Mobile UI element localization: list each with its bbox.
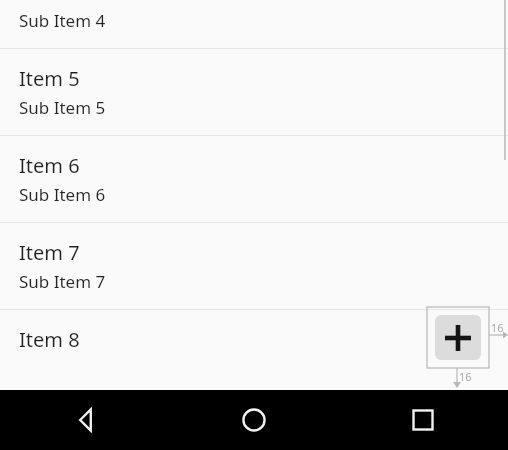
staticText: Item 5 xyxy=(19,65,80,92)
staticText: Item 6 xyxy=(19,152,80,179)
staticText: Item 7 xyxy=(19,239,80,266)
button[interactable]: Item 6 xyxy=(0,136,508,223)
button[interactable]: Back xyxy=(0,390,169,450)
button[interactable]: Item 4 xyxy=(0,0,508,49)
button[interactable]: Item 7 xyxy=(0,223,508,310)
staticText: 16 xyxy=(459,369,472,384)
staticText: Sub Item 7 xyxy=(19,270,106,293)
staticText: Sub Item 4 xyxy=(19,9,106,32)
button[interactable]: Item 8 xyxy=(0,310,508,352)
button[interactable]: Item 5 xyxy=(0,49,508,136)
button[interactable]: Recent apps xyxy=(338,390,508,450)
staticText: Sub Item 6 xyxy=(19,183,106,206)
staticText: Sub Item 5 xyxy=(19,96,106,119)
staticText: 16 xyxy=(491,320,504,335)
button[interactable]: Add xyxy=(435,315,481,360)
staticText: Item 8 xyxy=(19,326,80,352)
button[interactable]: Home xyxy=(169,390,338,450)
